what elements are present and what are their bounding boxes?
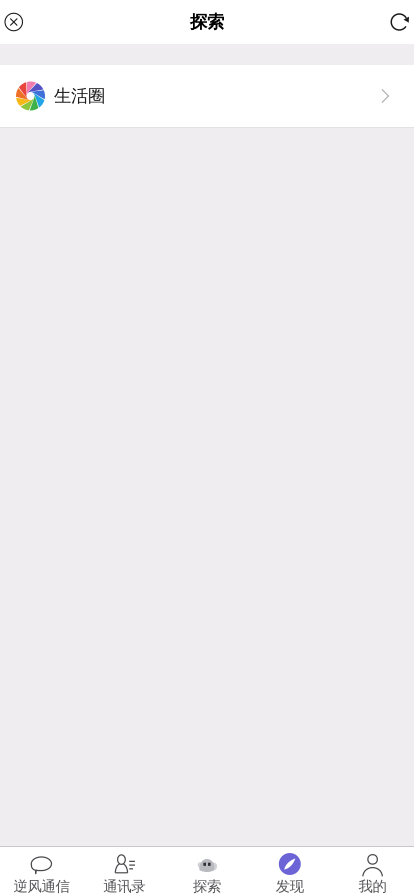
- button[interactable]: 我的: [331, 847, 414, 896]
- staticText: 发现: [276, 877, 304, 895]
- staticText: 通讯录: [103, 877, 145, 895]
- button[interactable]: 发现: [248, 847, 331, 896]
- staticText: 我的: [359, 877, 387, 895]
- button[interactable]: 生活圈: [0, 65, 414, 127]
- staticText: 探索: [193, 877, 221, 895]
- button[interactable]: Close: [0, 0, 38, 44]
- button[interactable]: 探索: [166, 847, 248, 896]
- staticText: 探索: [190, 11, 224, 33]
- button[interactable]: Refresh: [374, 0, 414, 44]
- staticText: 生活圈: [54, 85, 105, 107]
- button[interactable]: 逆风通信: [0, 847, 83, 896]
- button[interactable]: 通讯录: [83, 847, 166, 896]
- staticText: 逆风通信: [13, 877, 69, 895]
